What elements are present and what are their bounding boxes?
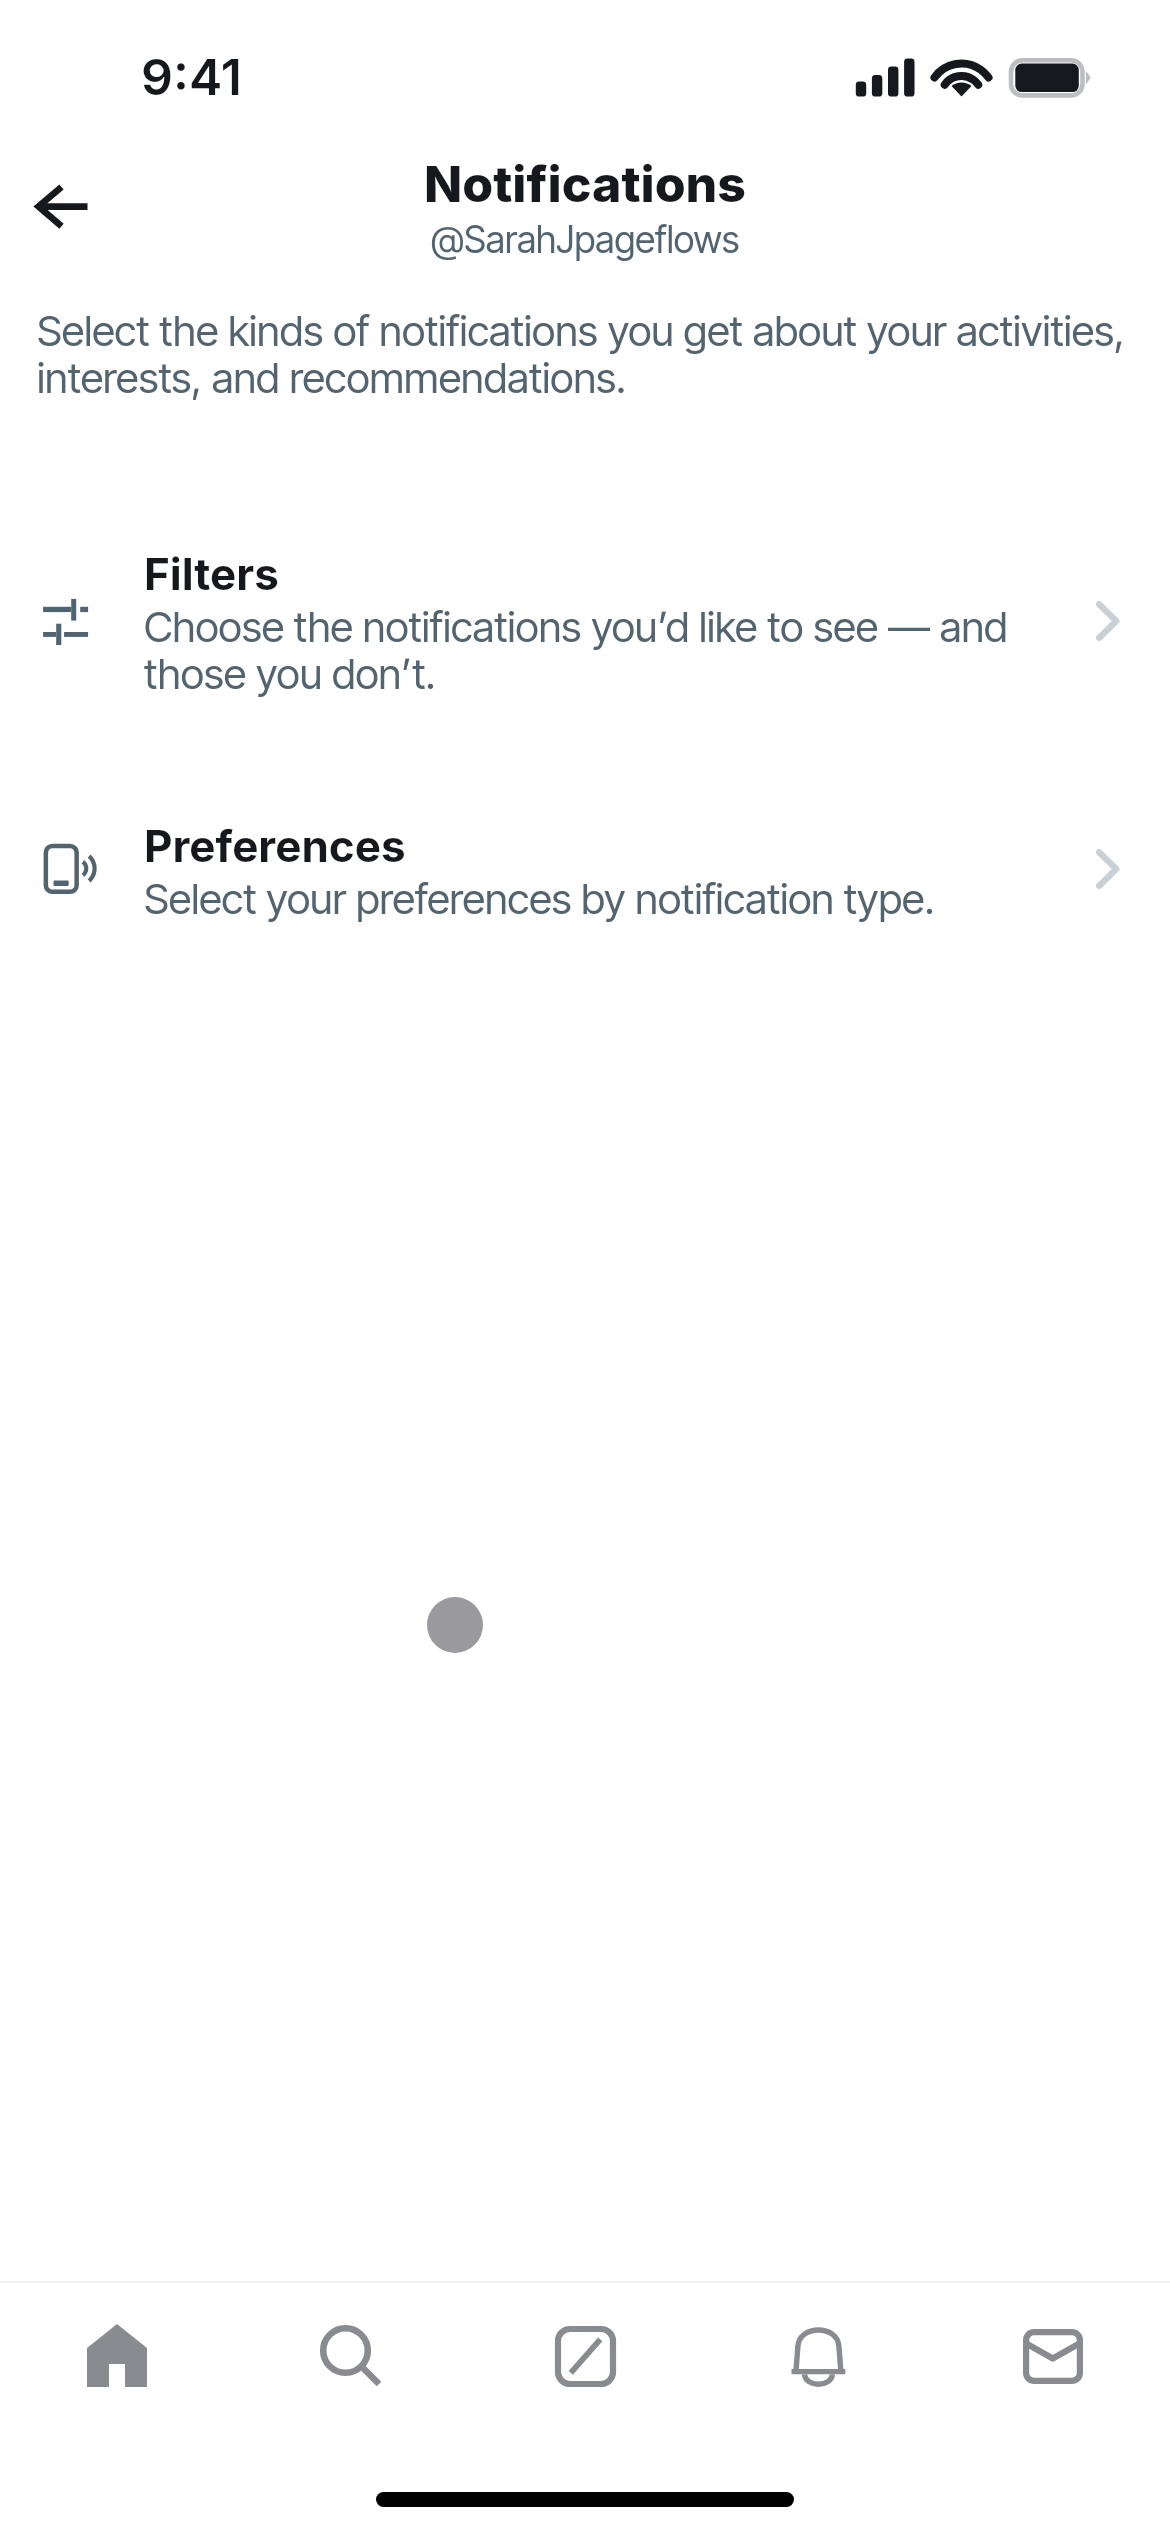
staticText: Notifications [424,156,747,214]
staticText: Filters [144,552,279,600]
staticText: @SarahJpageflows [431,216,740,262]
staticText: 9:41 [141,47,242,107]
staticText: Choose the notifications you’d like to s… [144,604,1044,698]
button[interactable]: Search [234,2283,468,2429]
staticText: Preferences [144,824,406,872]
button[interactable]: Filters [0,533,1170,709]
staticText: Select your preferences by notification … [144,876,1044,923]
button[interactable]: Messages [936,2283,1170,2429]
staticText: Select the kinds of notifications you ge… [37,308,1133,402]
button[interactable]: Back [0,156,120,256]
button[interactable]: Home [0,2283,234,2429]
button[interactable]: Compose [468,2283,702,2429]
button[interactable]: Notifications [702,2283,936,2429]
button[interactable]: Preferences [0,805,1170,933]
